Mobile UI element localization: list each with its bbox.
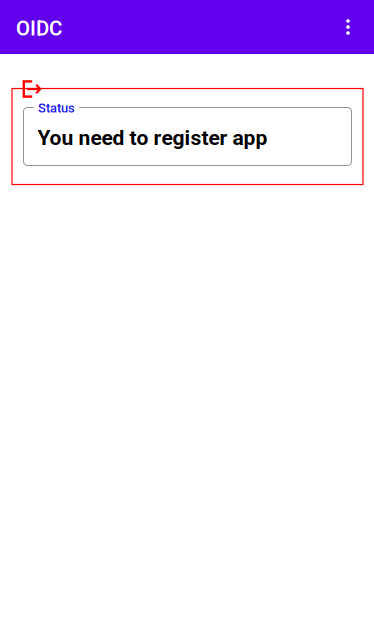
- staticText: You need to register app: [37, 125, 267, 150]
- button[interactable]: More options: [326, 0, 370, 54]
- button[interactable]: Log out: [23, 80, 42, 98]
- staticText: OIDC: [16, 16, 62, 40]
- staticText: Status: [38, 100, 75, 116]
